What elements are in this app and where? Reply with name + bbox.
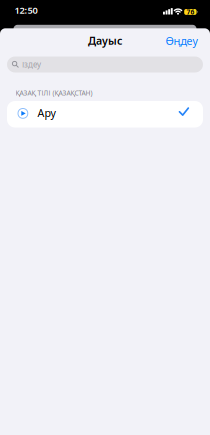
button[interactable] <box>7 101 203 127</box>
staticText: 76 <box>186 7 194 16</box>
button[interactable]: Іздеу <box>7 56 203 72</box>
staticText: ҚАЗАҚ ТІЛІ (ҚАЗАҚСТАН) <box>15 88 92 97</box>
staticText: Ару <box>37 106 55 120</box>
staticText: Іздеу <box>22 59 41 70</box>
button[interactable] <box>16 107 29 120</box>
staticText: Өңдеу <box>165 34 197 48</box>
staticText: 12:50 <box>14 4 37 16</box>
button[interactable]: Өңдеу <box>165 34 197 48</box>
staticText: Дауыс <box>88 33 122 48</box>
